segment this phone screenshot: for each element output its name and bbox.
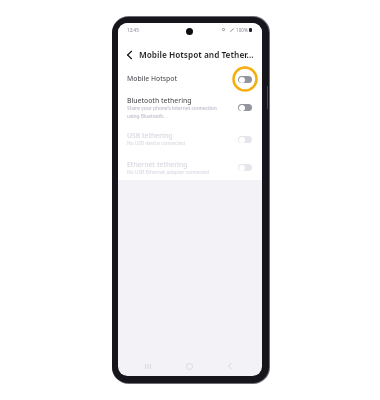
staticText: Bluetooth tethering — [127, 96, 192, 105]
button[interactable]: USB tethering — [118, 126, 262, 155]
staticText: Share your phone's internet connection u… — [127, 105, 222, 119]
button[interactable]: Toggle — [238, 164, 252, 171]
staticText: No USB device connected — [127, 140, 222, 147]
button[interactable]: Toggle — [238, 104, 252, 111]
staticText: 100% — [236, 27, 248, 33]
staticText: Mobile Hotspot and Tether... — [139, 49, 262, 60]
button[interactable]: Toggle — [238, 76, 252, 83]
button[interactable]: Home — [180, 357, 198, 375]
button[interactable]: Toggle — [238, 136, 252, 143]
staticText: USB tethering — [127, 131, 173, 140]
staticText: Mobile Hotspot — [127, 74, 178, 83]
staticText: Ethernet tethering — [127, 160, 188, 169]
staticText: 12:45 — [127, 27, 139, 33]
button[interactable]: Mobile Hotspot — [118, 69, 262, 88]
button[interactable]: Back — [123, 48, 136, 61]
button[interactable]: Bluetooth tethering — [118, 91, 262, 120]
staticText: No USB Ethernet adapter connected — [127, 169, 222, 176]
button[interactable]: Recent apps — [139, 357, 157, 375]
button[interactable]: Ethernet tethering — [118, 155, 262, 184]
